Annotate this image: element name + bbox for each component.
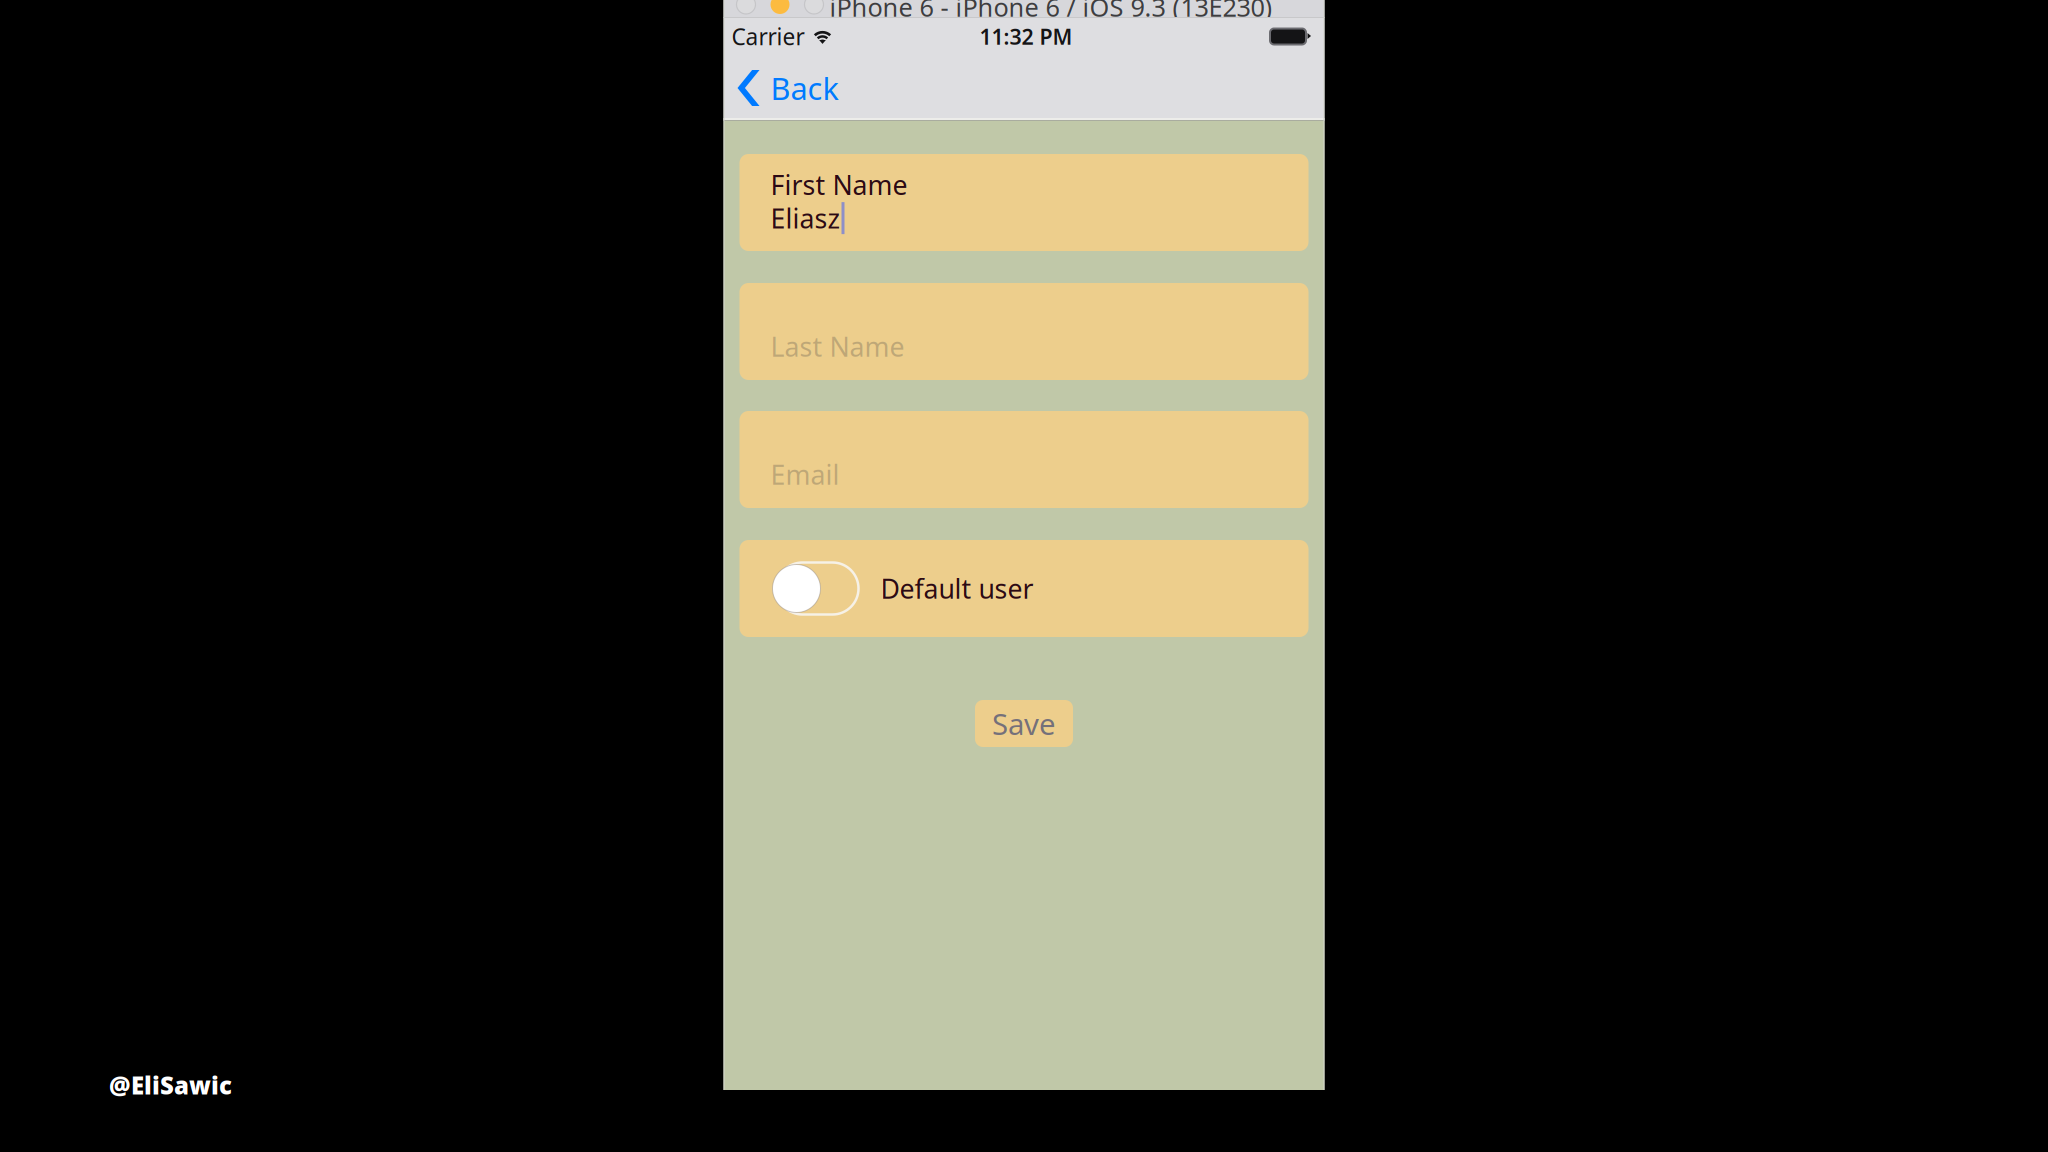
staticText: Save (992, 704, 1056, 743)
staticText: Back (770, 68, 838, 108)
staticText: Carrier (731, 21, 804, 51)
button[interactable]: Save (975, 700, 1073, 747)
button[interactable]: Last Name (739, 283, 1308, 380)
staticText: iPhone 6 - iPhone 6 / iOS 9.3 (13E230) (829, 0, 1272, 24)
button[interactable]: Email (739, 411, 1308, 508)
staticText: First Name (770, 167, 907, 202)
button[interactable]: First Name (739, 154, 1308, 251)
staticText: Last Name (770, 329, 904, 364)
staticText: @EliSawic (109, 1069, 232, 1101)
staticText: Email (770, 457, 839, 492)
staticText: Eliasz (770, 200, 840, 236)
staticText: 11:32 PM (979, 22, 1072, 51)
button[interactable]: Default user (739, 540, 1308, 637)
button[interactable]: Back (723, 55, 850, 121)
staticText: Default user (880, 571, 1033, 606)
